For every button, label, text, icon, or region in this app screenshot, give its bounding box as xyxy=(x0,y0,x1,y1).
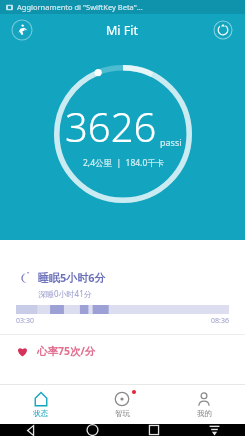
staticText: 2,4公里 | 184.0千卡 xyxy=(83,157,165,169)
button[interactable]: 睡眠5小时6分 xyxy=(0,270,245,326)
staticText: 智玩 xyxy=(115,409,130,418)
button[interactable]: Home xyxy=(62,424,123,436)
staticText: Mi Fit xyxy=(106,22,139,39)
staticText: passi xyxy=(160,136,182,148)
staticText: 睡眠5小时6分 xyxy=(38,270,106,285)
staticText: 我的 xyxy=(197,409,212,418)
button[interactable]: Hide navigation bar xyxy=(184,424,245,436)
button[interactable]: Sync xyxy=(211,18,235,42)
button[interactable]: Activity xyxy=(10,18,34,42)
staticText: 心率75次/分 xyxy=(37,344,96,358)
staticText: 08:36 xyxy=(211,316,229,326)
button[interactable]: 我的 xyxy=(163,385,245,424)
staticText: 3626 xyxy=(65,99,157,153)
button[interactable]: 状态 xyxy=(0,385,81,424)
button[interactable]: Recents xyxy=(123,424,184,436)
staticText: 深睡0小时41分 xyxy=(38,288,92,299)
button[interactable]: 智玩 xyxy=(81,385,163,424)
staticText: 03:30 xyxy=(16,316,34,326)
button[interactable]: 3626 xyxy=(53,64,193,204)
button[interactable]: Back xyxy=(0,424,62,436)
staticText: Aggiornamento di "SwiftKey Beta"... xyxy=(17,2,143,12)
staticText: 状态 xyxy=(33,409,48,418)
button[interactable]: 心率75次/分 xyxy=(0,344,245,358)
